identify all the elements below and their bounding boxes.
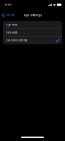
staticText: App Settings [23, 14, 41, 17]
button[interactable]: Light Mode [3, 21, 62, 28]
button[interactable]: Dark Mode [3, 29, 62, 36]
staticText: Use Device Settings [6, 39, 27, 42]
button[interactable]: Use Device Settings [3, 37, 62, 44]
staticText: Settings [5, 14, 14, 17]
staticText: Dark Mode [6, 31, 17, 34]
button[interactable]: Settings [0, 11, 16, 19]
staticText: Light Mode [6, 23, 17, 26]
staticText: 9:41 [5, 3, 11, 6]
